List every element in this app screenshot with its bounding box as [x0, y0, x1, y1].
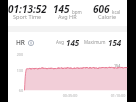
staticText: 200	[8, 52, 23, 57]
button[interactable]: Heart rate info	[27, 39, 34, 46]
staticText: 60	[8, 88, 23, 93]
staticText: 01:10:00	[108, 93, 128, 98]
staticText: 145	[53, 2, 70, 16]
staticText: kcal	[112, 9, 121, 15]
staticText: 606	[93, 2, 110, 16]
staticText: 01:13:52	[8, 2, 47, 16]
staticText: Avg HR	[58, 13, 77, 20]
staticText: HR	[16, 38, 25, 47]
staticText: Avg	[56, 39, 64, 45]
staticText: 154	[114, 63, 121, 68]
staticText: 130	[8, 68, 23, 73]
staticText: 00:35:00	[60, 93, 80, 98]
staticText: Calorie	[98, 13, 117, 20]
staticText: Sport Time	[13, 13, 42, 20]
staticText: Maximum	[84, 39, 106, 45]
staticText: bpm	[72, 9, 82, 15]
staticText: 154	[108, 37, 122, 47]
staticText: 145	[66, 37, 80, 47]
